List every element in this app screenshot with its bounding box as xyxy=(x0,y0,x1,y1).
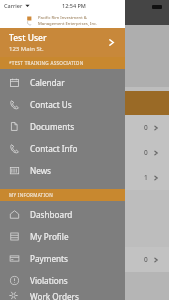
staticText: My Profile xyxy=(30,231,69,242)
staticText: Work Orders xyxy=(30,291,79,300)
staticText: Pacific Rim Investment & xyxy=(38,15,87,21)
staticText: Management Enterprises, Inc. xyxy=(38,21,98,27)
staticText: News xyxy=(30,165,52,176)
button[interactable]: News xyxy=(0,159,125,181)
button[interactable]: 0 xyxy=(144,255,159,264)
staticText: Payments xyxy=(30,253,68,264)
button[interactable]: My Profile xyxy=(0,225,125,247)
button[interactable]: Payments xyxy=(0,247,125,269)
button[interactable]: Dashboard xyxy=(0,203,125,225)
button[interactable]: Test User xyxy=(0,28,125,57)
staticText: 0 xyxy=(144,255,148,264)
button[interactable]: Contact Us xyxy=(0,93,125,115)
staticText: Contact Info xyxy=(30,143,78,154)
button[interactable]: Work Orders xyxy=(0,291,125,300)
button[interactable]: Documents xyxy=(0,115,125,137)
staticText: 0 xyxy=(144,123,148,132)
staticText: Test User xyxy=(9,32,47,44)
button[interactable]: Contact Info xyxy=(0,137,125,159)
staticText: 1 xyxy=(144,173,148,182)
button[interactable]: 0 xyxy=(144,148,159,157)
staticText: Violations xyxy=(30,275,68,286)
staticText: Contact Us xyxy=(30,99,72,110)
staticText: 0 xyxy=(144,148,148,157)
staticText: MY INFORMATION xyxy=(9,192,54,198)
staticText: *TEST TRAINING ASSOCIATION xyxy=(9,60,84,66)
button[interactable]: Violations xyxy=(0,269,125,291)
button[interactable]: Calendar xyxy=(0,71,125,93)
staticText: Dashboard xyxy=(30,209,73,220)
button[interactable]: 1 xyxy=(144,173,159,182)
staticText: 123 Main St. xyxy=(9,45,44,53)
staticText: Carrier xyxy=(4,2,23,9)
staticText: Documents xyxy=(30,121,75,132)
staticText: Calendar xyxy=(30,77,65,88)
staticText: 12:54 PM xyxy=(62,2,86,9)
button[interactable]: 0 xyxy=(144,123,159,132)
